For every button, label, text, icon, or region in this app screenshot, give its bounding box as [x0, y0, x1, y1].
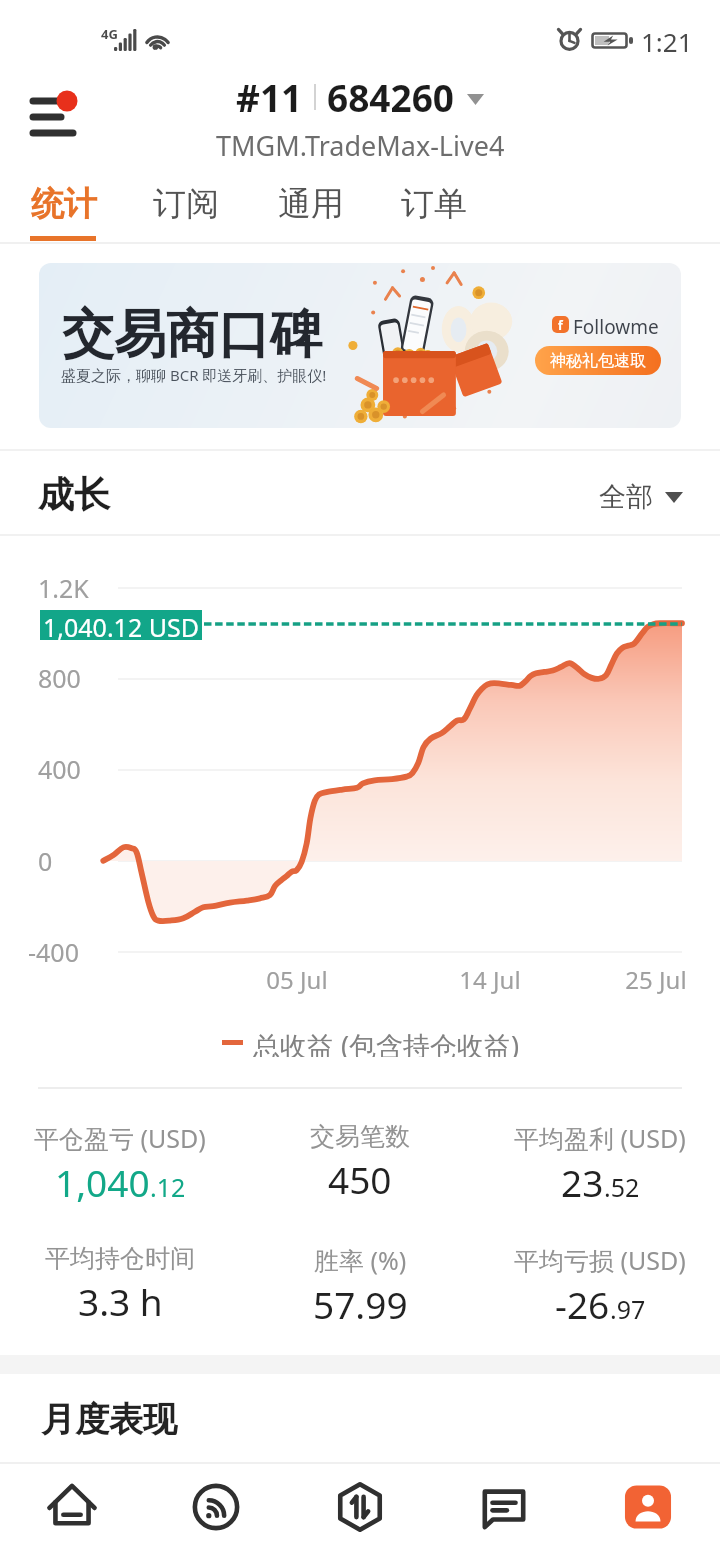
staticText: 0 [38, 844, 53, 878]
staticText: 57.99 [313, 1279, 408, 1329]
button[interactable]: 订阅 [136, 175, 236, 243]
staticText: 盛夏之际，聊聊 BCR 即送牙刷、护眼仪! [61, 365, 327, 385]
staticText: 3.3 h [78, 1276, 163, 1326]
button[interactable]: Menu [12, 78, 92, 148]
staticText: 神秘礼包速取 [550, 351, 646, 371]
button[interactable]: 交易商口碑 [39, 263, 681, 428]
button[interactable]: Messages [432, 1462, 576, 1560]
staticText: -26 [555, 1279, 610, 1329]
staticText: 胜率 (%) [314, 1243, 407, 1277]
staticText: .97 [610, 1292, 646, 1326]
staticText: .12 [150, 1170, 186, 1204]
staticText: 1,040.12 USD [43, 610, 199, 640]
button[interactable]: 神秘礼包速取 [535, 346, 661, 375]
button[interactable]: 全部 [599, 480, 683, 514]
staticText: 平均亏损 (USD) [514, 1243, 686, 1277]
staticText: 订单 [401, 183, 467, 225]
button[interactable]: Profile [576, 1462, 720, 1560]
staticText: Followme [573, 314, 659, 340]
staticText: 平均持仓时间 [45, 1243, 195, 1274]
staticText: 684260 [327, 72, 454, 122]
staticText: 800 [38, 661, 81, 695]
staticText: 14 Jul [440, 963, 540, 996]
button[interactable]: Discover [144, 1462, 288, 1560]
staticText: 05 Jul [247, 963, 347, 996]
staticText: 月度表现 [41, 1398, 177, 1441]
staticText: 25 Jul [606, 963, 706, 996]
staticText: #11 [236, 72, 303, 122]
staticText: 1:21 [641, 24, 693, 59]
staticText: 23 [561, 1157, 604, 1207]
staticText: 成长 [38, 472, 110, 517]
staticText: 全部 [599, 480, 653, 514]
staticText: .52 [604, 1170, 640, 1204]
staticText: 订阅 [153, 183, 219, 225]
button[interactable]: 统计 [14, 175, 114, 243]
staticText: 交易笔数 [310, 1121, 410, 1152]
staticText: -400 [28, 935, 79, 969]
staticText: f [558, 317, 563, 333]
button[interactable]: Trade [288, 1462, 432, 1560]
staticText: 交易商口碑 [62, 302, 322, 368]
button[interactable]: 通用 [261, 175, 361, 243]
staticText: 4G [101, 25, 118, 43]
staticText: TMGM.TradeMax-Live4 [216, 127, 505, 164]
staticText: 平仓盈亏 (USD) [34, 1121, 206, 1155]
staticText: 统计 [31, 183, 97, 225]
button[interactable]: 订单 [384, 175, 484, 243]
staticText: 通用 [278, 183, 344, 225]
staticText: 总收益 (包含持仓收益) [253, 1027, 520, 1057]
staticText: 400 [38, 752, 81, 786]
staticText: 450 [328, 1154, 392, 1204]
staticText: 1,040 [55, 1157, 150, 1207]
staticText: 平均盈利 (USD) [514, 1121, 686, 1155]
button[interactable]: Home [0, 1462, 144, 1560]
staticText: 1.2K [38, 571, 89, 605]
